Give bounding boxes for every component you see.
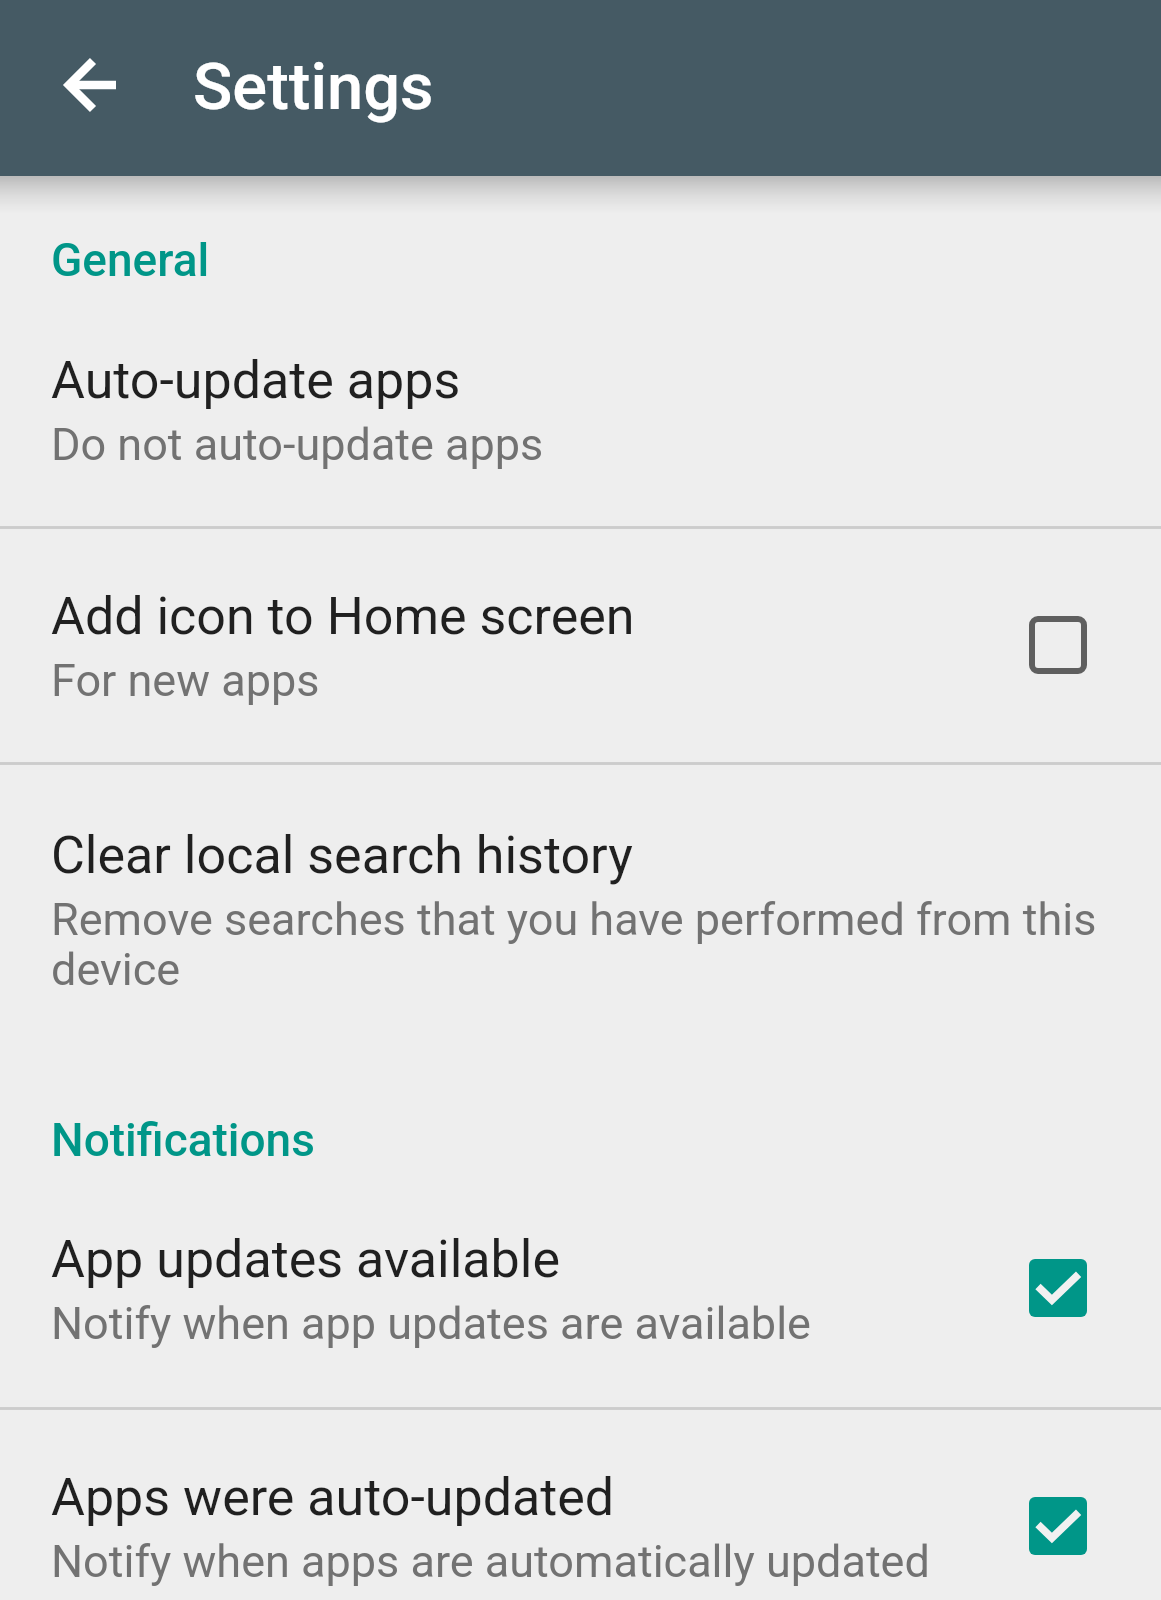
button[interactable]: App updates available <box>0 1229 1161 1350</box>
button[interactable]: Enabled <box>1029 1259 1087 1317</box>
button[interactable]: Apps were auto-updated <box>0 1467 1161 1588</box>
staticText: Apps were auto-updated <box>51 1467 615 1528</box>
staticText: Notify when app updates are available <box>51 1297 811 1350</box>
staticText: Do not auto-update apps <box>51 418 544 471</box>
staticText: Notifications <box>51 1113 315 1167</box>
staticText: Notify when apps are automatically updat… <box>51 1535 930 1588</box>
button[interactable]: Navigate up <box>45 61 93 109</box>
button[interactable]: Enabled <box>1029 1497 1087 1555</box>
staticText: Clear local search history <box>51 825 633 886</box>
button[interactable]: Add icon to Home screen <box>0 586 1161 707</box>
staticText: Settings <box>193 49 434 125</box>
staticText: General <box>51 233 210 287</box>
staticText: App updates available <box>51 1229 561 1290</box>
button[interactable]: Disabled <box>1029 616 1087 674</box>
staticText: Auto-update apps <box>51 350 461 411</box>
staticText: For new apps <box>51 654 320 707</box>
staticText: Add icon to Home screen <box>51 586 635 647</box>
staticText: Remove searches that you have performed … <box>51 893 1103 996</box>
